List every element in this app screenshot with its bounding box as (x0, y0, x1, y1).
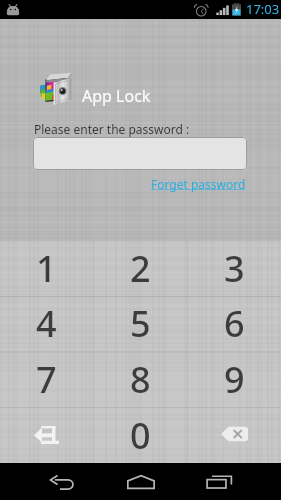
button[interactable]: Forget password (151, 176, 246, 192)
staticText: 17:03 (246, 0, 280, 18)
staticText: 8 (130, 355, 151, 404)
button[interactable]: 3 (187, 241, 281, 296)
button[interactable]: Delete (187, 407, 281, 463)
button[interactable]: 0 (93, 407, 187, 463)
button[interactable] (33, 137, 247, 170)
button[interactable]: 9 (187, 351, 281, 407)
staticText: 6 (224, 299, 245, 348)
button[interactable]: 4 (0, 296, 93, 351)
button[interactable]: 2 (93, 241, 187, 296)
button[interactable]: Back (38, 463, 87, 500)
other: Back (50, 475, 75, 490)
button[interactable]: 5 (93, 296, 187, 351)
button[interactable]: Recents (195, 463, 244, 500)
button[interactable]: 6 (187, 296, 281, 351)
button[interactable]: Home (116, 463, 165, 500)
staticText: Please enter the password : (34, 121, 190, 137)
staticText: App Lock (82, 85, 151, 107)
staticText: 5 (130, 299, 151, 348)
other: Delete (221, 426, 248, 442)
staticText: 2 (130, 244, 151, 293)
other: Recents (206, 475, 233, 489)
button[interactable]: 8 (93, 351, 187, 407)
button[interactable]: 7 (0, 351, 93, 407)
staticText: 9 (224, 355, 245, 404)
button[interactable]: 1 (0, 241, 93, 296)
other: Enter (34, 426, 59, 444)
button[interactable]: Enter (0, 407, 93, 463)
staticText: 1 (36, 244, 57, 293)
staticText: 7 (36, 355, 57, 404)
staticText: 4 (36, 299, 57, 348)
staticText: Forget password (151, 176, 246, 192)
staticText: 0 (130, 411, 151, 460)
staticText: 3 (224, 244, 245, 293)
other: Home (127, 475, 155, 489)
